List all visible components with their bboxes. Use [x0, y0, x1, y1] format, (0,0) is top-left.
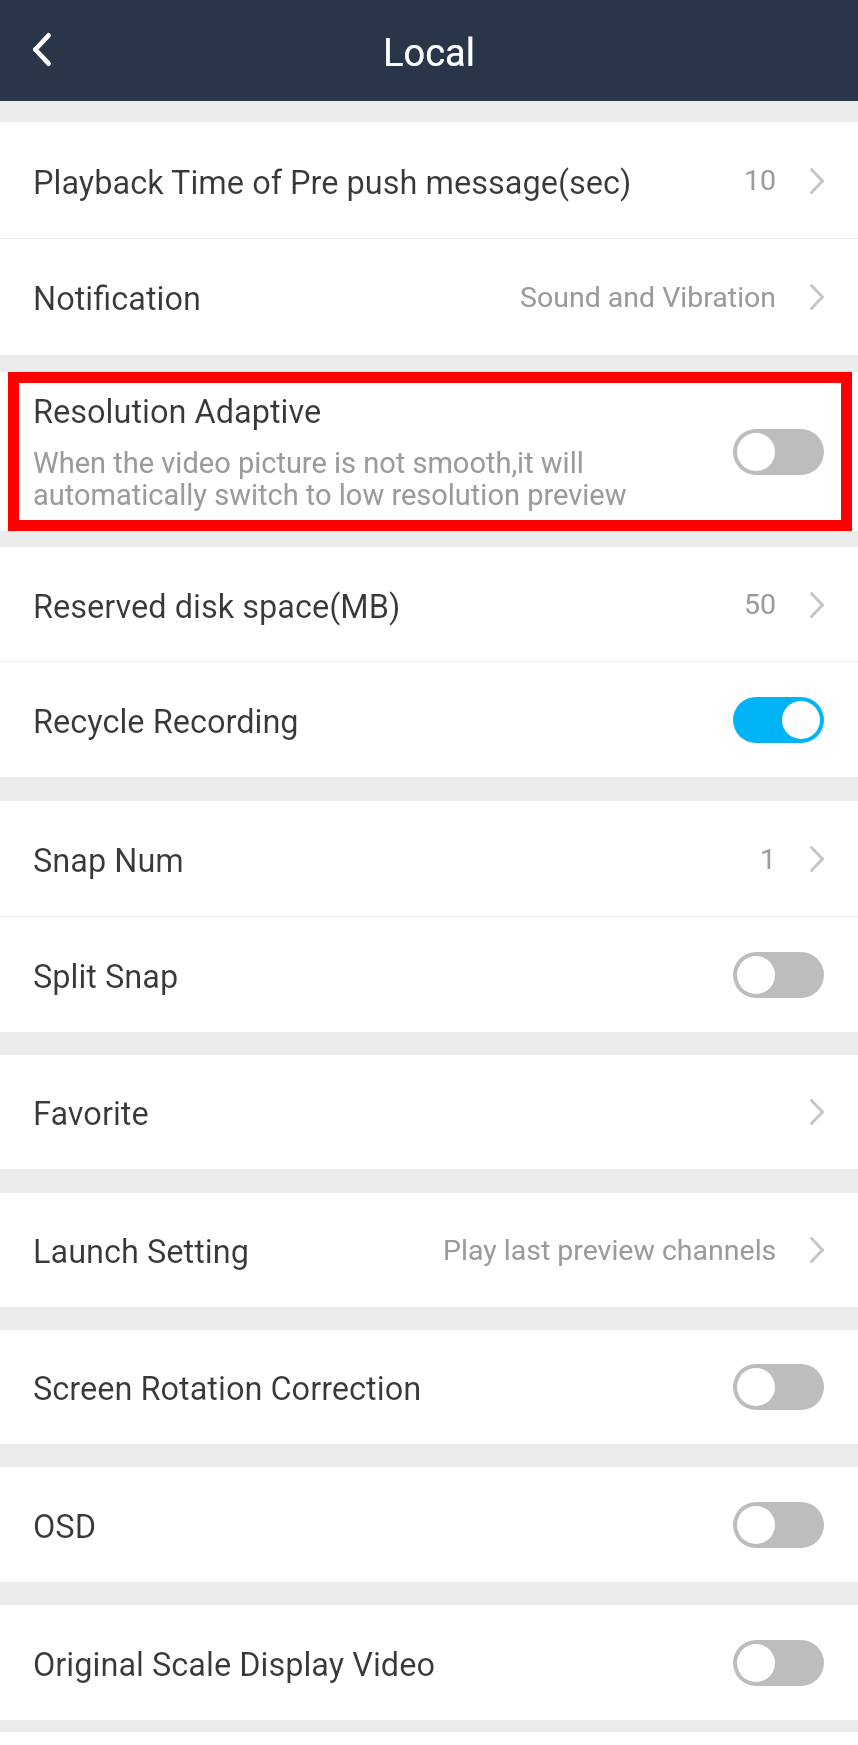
staticText: Reserved disk space(MB): [33, 588, 401, 626]
staticText: 50: [744, 588, 777, 621]
staticText: Local: [383, 31, 475, 76]
staticText: Sound and Vibration: [520, 281, 777, 314]
button[interactable]: Snap Num: [0, 801, 858, 917]
staticText: When the video picture is not smooth,it …: [33, 446, 627, 512]
staticText: Play last preview channels: [443, 1234, 777, 1267]
button[interactable]: OSD: [0, 1467, 858, 1582]
staticText: 10: [744, 164, 777, 197]
staticText: Split Snap: [33, 958, 179, 996]
button[interactable]: Recycle Recording: [733, 697, 824, 743]
staticText: OSD: [33, 1508, 96, 1546]
staticText: Original Scale Display Video: [33, 1646, 435, 1684]
button[interactable]: Resolution Adaptive: [733, 429, 824, 475]
button[interactable]: Split Snap: [0, 917, 858, 1032]
staticText: Recycle Recording: [33, 703, 299, 741]
staticText: Resolution Adaptive: [33, 393, 322, 431]
button[interactable]: Reserved disk space(MB): [0, 547, 858, 662]
staticText: Snap Num: [33, 842, 184, 880]
button[interactable]: Favorite: [0, 1055, 858, 1169]
button[interactable]: Original Scale Display Video: [0, 1605, 858, 1720]
button[interactable]: Screen Rotation Correction: [0, 1330, 858, 1444]
staticText: Notification: [33, 280, 201, 318]
button[interactable]: Split Snap: [733, 952, 824, 998]
staticText: Playback Time of Pre push message(sec): [33, 164, 632, 202]
button[interactable]: Recycle Recording: [0, 662, 858, 777]
staticText: Favorite: [33, 1095, 149, 1133]
staticText: 1: [760, 843, 777, 876]
staticText: Launch Setting: [33, 1233, 249, 1271]
button[interactable]: Launch Setting: [0, 1193, 858, 1307]
button[interactable]: Original Scale Display Video: [733, 1640, 824, 1686]
button[interactable]: Notification: [0, 239, 858, 355]
button[interactable]: Back: [4, 13, 80, 89]
button[interactable]: Screen Rotation Correction: [733, 1364, 824, 1410]
button[interactable]: Playback Time of Pre push message(sec): [0, 122, 858, 239]
button[interactable]: OSD: [733, 1502, 824, 1548]
button[interactable]: Resolution Adaptive: [0, 372, 858, 531]
staticText: Screen Rotation Correction: [33, 1370, 422, 1408]
